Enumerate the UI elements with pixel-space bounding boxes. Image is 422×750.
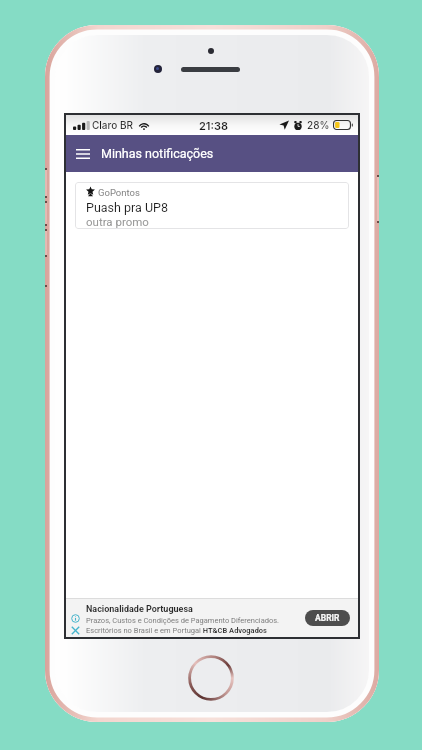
staticText: Claro BR — [92, 119, 133, 131]
button[interactable]: ABRIR — [305, 610, 350, 626]
button[interactable]: GoPontos — [75, 182, 349, 229]
staticText: Prazos, Custos e Condições de Pagamento … — [86, 616, 280, 625]
staticText: GoPontos — [98, 187, 140, 198]
staticText: outra promo — [86, 215, 149, 228]
staticText: Escritórios no Brasil e em Portugal HT&C… — [86, 626, 267, 635]
staticText: ABRIR — [315, 613, 340, 623]
staticText: Minhas notificações — [101, 146, 214, 161]
button[interactable]: Menu — [70, 141, 96, 167]
button[interactable]: Nacionalidade Portuguesa — [66, 598, 358, 637]
staticText: Nacionalidade Portuguesa — [86, 604, 193, 615]
staticText: Puash pra UP8 — [86, 200, 168, 215]
staticText: 21:38 — [199, 119, 229, 132]
staticText: 28% — [307, 119, 330, 131]
